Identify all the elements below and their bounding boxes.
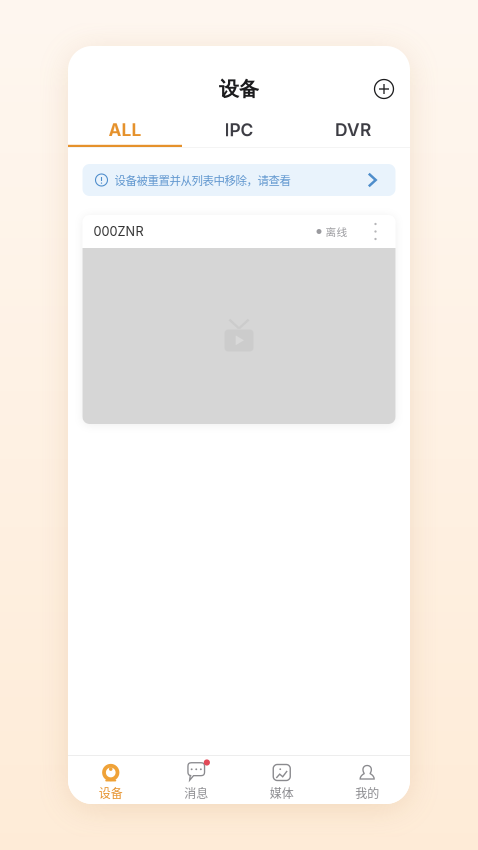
button[interactable]: 设备 [68,756,153,804]
button[interactable]: Add device [372,77,396,101]
button[interactable]: DVR [296,111,410,147]
staticText: 000ZNR [93,224,143,239]
button[interactable]: 设备被重置并从列表中移除，请查看 [82,164,395,196]
staticText: IPC [224,119,253,140]
staticText: DVR [335,119,371,140]
staticText: 离线 [325,224,347,239]
button[interactable]: ALL [68,111,182,147]
staticText: 我的 [355,784,379,801]
staticText: ALL [108,119,141,140]
staticText: 设备 [219,76,259,102]
button[interactable]: More options [368,220,382,242]
button[interactable]: IPC [182,111,296,147]
staticText: 设备 [99,784,123,801]
staticText: 媒体 [270,784,294,801]
button[interactable]: 消息 [153,756,239,804]
button[interactable]: 我的 [324,756,410,804]
staticText: 消息 [184,784,208,801]
button[interactable]: 媒体 [239,756,324,804]
staticText: 设备被重置并从列表中移除，请查看 [114,172,290,188]
